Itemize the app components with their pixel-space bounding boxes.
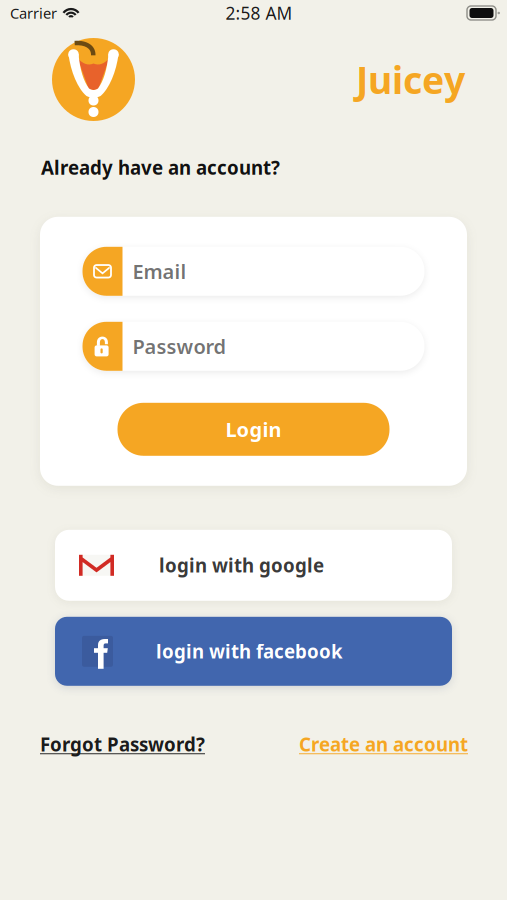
staticText: Email bbox=[132, 258, 186, 285]
staticText: Password bbox=[132, 333, 226, 360]
staticText: Juicey bbox=[356, 55, 465, 104]
staticText: Create an account bbox=[299, 732, 468, 757]
staticText: 2:58 AM bbox=[225, 1, 292, 24]
staticText: Login bbox=[225, 416, 281, 443]
staticText: login with facebook bbox=[156, 639, 343, 664]
staticText: login with google bbox=[159, 553, 324, 578]
button[interactable]: login with facebook bbox=[55, 617, 452, 686]
button[interactable]: login with google bbox=[55, 530, 452, 601]
staticText: Already have an account? bbox=[41, 155, 280, 180]
button[interactable]: Forgot Password? bbox=[40, 732, 205, 757]
button[interactable]: Login bbox=[117, 403, 389, 456]
staticText: Carrier bbox=[10, 3, 57, 23]
staticText: Forgot Password? bbox=[40, 732, 205, 757]
button[interactable]: Create an account bbox=[299, 732, 468, 757]
